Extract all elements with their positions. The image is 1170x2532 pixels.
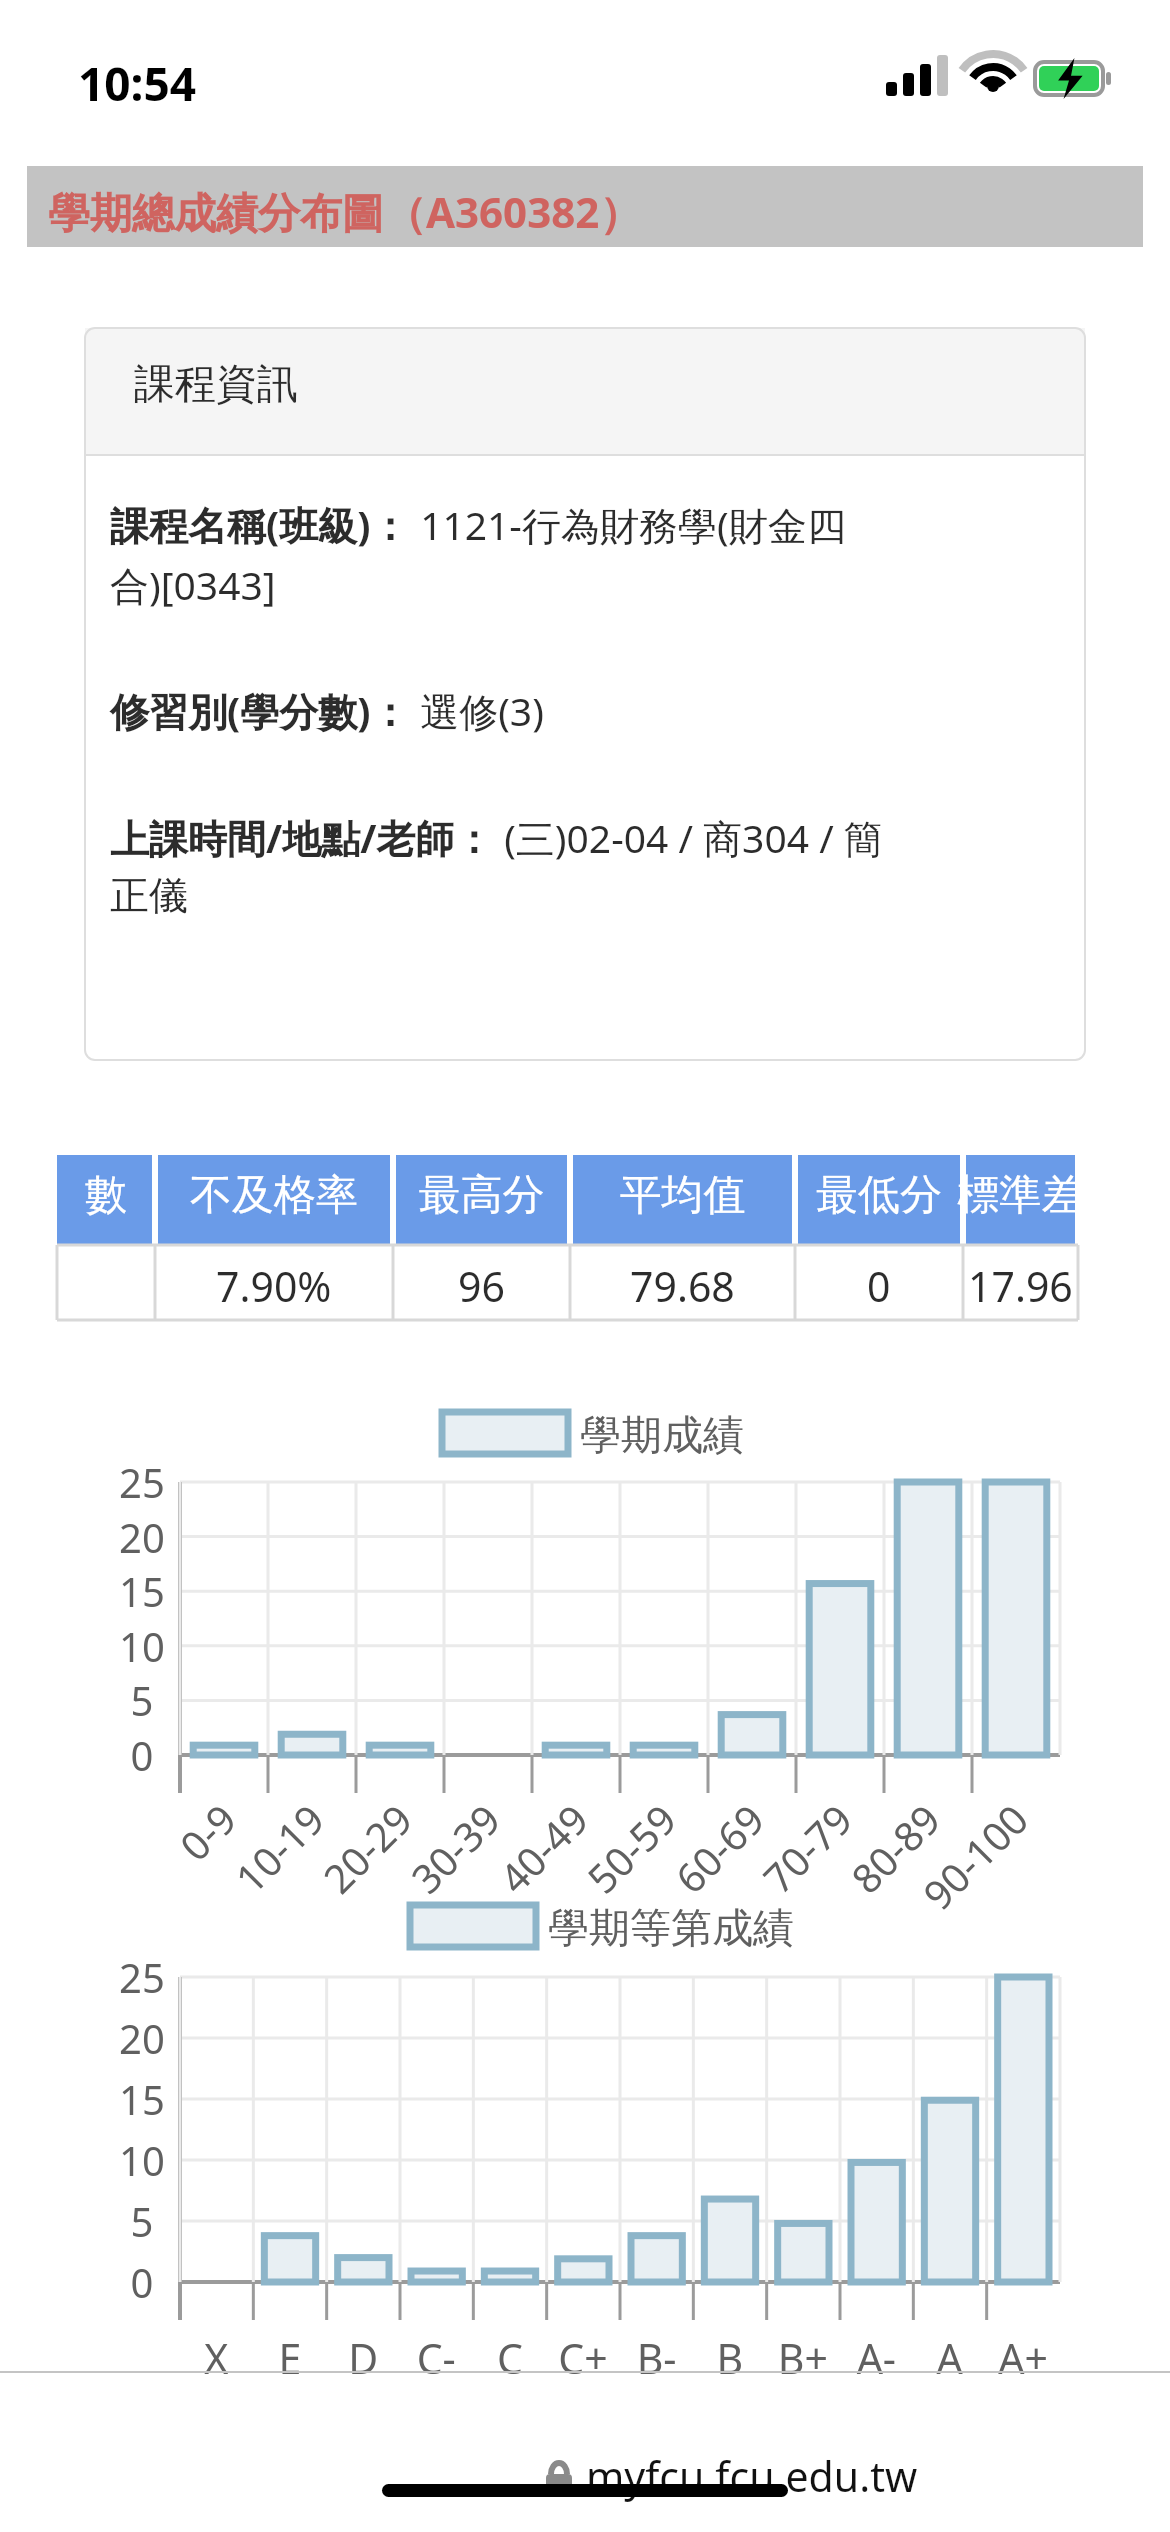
button[interactable]: myfcu.fcu.edu.tw address bar: [0, 2432, 1170, 2492]
